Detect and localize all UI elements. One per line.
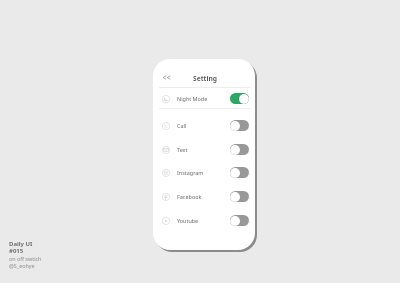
- button[interactable]: Toggle off: [230, 144, 249, 155]
- staticText: Daily UI: [9, 240, 33, 248]
- staticText: Instagram: [177, 169, 204, 176]
- staticText: Youtube: [177, 217, 199, 224]
- button[interactable]: Toggle off: [230, 215, 249, 226]
- button[interactable]: Back: [160, 71, 173, 84]
- button[interactable]: Toggle on: [230, 93, 249, 104]
- button[interactable]: Toggle off: [230, 167, 249, 178]
- staticText: #015: [9, 247, 24, 255]
- button[interactable]: Youtube: [153, 209, 255, 231]
- button[interactable]: Call: [153, 114, 255, 136]
- button[interactable]: Toggle off: [230, 120, 249, 131]
- button[interactable]: Instagram: [153, 161, 255, 183]
- button[interactable]: Night Mode: [153, 87, 255, 109]
- staticText: @S_eohye: [9, 262, 35, 269]
- button[interactable]: Text: [153, 138, 255, 160]
- staticText: Night Mode: [177, 95, 208, 102]
- button[interactable]: Facebook: [153, 185, 255, 207]
- staticText: on off swtich: [9, 255, 42, 262]
- staticText: Facebook: [177, 193, 202, 200]
- button[interactable]: Toggle off: [230, 191, 249, 202]
- staticText: Text: [177, 146, 188, 153]
- staticText: Setting: [193, 74, 218, 83]
- staticText: Call: [177, 122, 187, 129]
